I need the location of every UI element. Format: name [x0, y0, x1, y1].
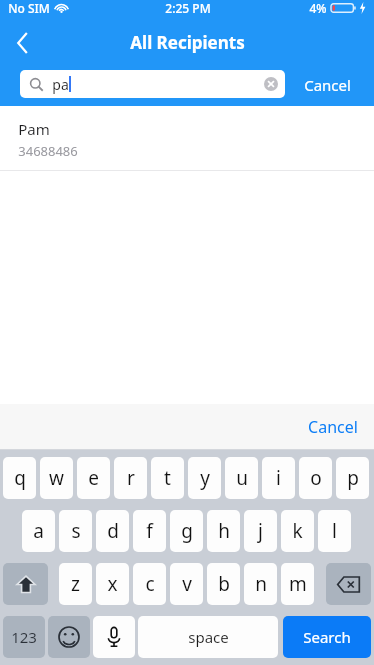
staticText: d [107, 518, 119, 544]
staticText: All Recipients [130, 31, 245, 54]
staticText: o [310, 465, 322, 491]
staticText: s [71, 518, 81, 544]
button[interactable]: Back [6, 28, 40, 58]
button[interactable]: Clear text [264, 77, 278, 91]
staticText: 123 [11, 627, 37, 647]
staticText: a [33, 518, 44, 544]
staticText: y [200, 465, 210, 491]
button[interactable]: pa [20, 70, 285, 98]
button[interactable]: j [244, 510, 277, 552]
staticText: j [258, 518, 263, 544]
staticText: b [218, 571, 230, 597]
staticText: v [182, 571, 192, 597]
staticText: l [332, 518, 337, 544]
staticText: h [218, 518, 230, 544]
button[interactable]: u [225, 457, 258, 499]
button[interactable]: x [96, 563, 129, 605]
button[interactable]: Pam [0, 106, 374, 170]
staticText: 34688486 [18, 142, 78, 160]
button[interactable]: o [299, 457, 332, 499]
button[interactable]: Search [283, 616, 371, 658]
staticText: r [127, 465, 135, 491]
button[interactable]: s [59, 510, 92, 552]
staticText: Search [303, 627, 351, 647]
staticText: 2:25 PM [165, 0, 211, 16]
button[interactable]: h [207, 510, 240, 552]
button[interactable]: n [244, 563, 277, 605]
staticText: 4% [309, 0, 327, 16]
button[interactable]: Emoji [48, 616, 90, 658]
staticText: e [88, 465, 99, 491]
button[interactable]: d [96, 510, 129, 552]
button[interactable]: q [3, 457, 36, 499]
staticText: x [107, 571, 118, 597]
staticText: n [255, 571, 267, 597]
staticText: Pam [18, 119, 50, 139]
staticText: space [188, 627, 229, 647]
staticText: No SIM [8, 0, 50, 16]
staticText: q [14, 465, 26, 491]
button[interactable]: r [114, 457, 147, 499]
staticText: p [347, 465, 359, 491]
staticText: u [236, 465, 248, 491]
button[interactable]: v [170, 563, 203, 605]
staticText: f [146, 518, 153, 544]
button[interactable]: 123 [3, 616, 45, 658]
button[interactable]: c [133, 563, 166, 605]
staticText: w [49, 465, 64, 491]
staticText: i [276, 465, 281, 491]
button[interactable]: i [262, 457, 295, 499]
staticText: c [145, 571, 155, 597]
button[interactable]: y [188, 457, 221, 499]
staticText: Cancel [304, 75, 351, 95]
button[interactable]: l [318, 510, 351, 552]
button[interactable]: t [151, 457, 184, 499]
button[interactable]: m [281, 563, 314, 605]
button[interactable]: Voice input [93, 616, 135, 658]
button[interactable]: a [22, 510, 55, 552]
staticText: m [289, 571, 307, 597]
button[interactable]: w [40, 457, 73, 499]
button[interactable]: g [170, 510, 203, 552]
button[interactable]: k [281, 510, 314, 552]
button[interactable]: e [77, 457, 110, 499]
button[interactable]: space [138, 616, 278, 658]
staticText: pa [52, 75, 69, 94]
button[interactable]: Delete [326, 563, 371, 605]
staticText: z [71, 571, 80, 597]
button[interactable]: z [59, 563, 92, 605]
button[interactable]: p [336, 457, 369, 499]
button[interactable]: f [133, 510, 166, 552]
button[interactable]: Cancel [302, 412, 364, 442]
staticText: t [164, 465, 171, 491]
button[interactable]: Cancel [298, 72, 357, 98]
staticText: k [292, 518, 303, 544]
staticText: Cancel [308, 416, 358, 438]
button[interactable]: b [207, 563, 240, 605]
button[interactable]: Shift [3, 563, 48, 605]
staticText: g [181, 518, 193, 544]
